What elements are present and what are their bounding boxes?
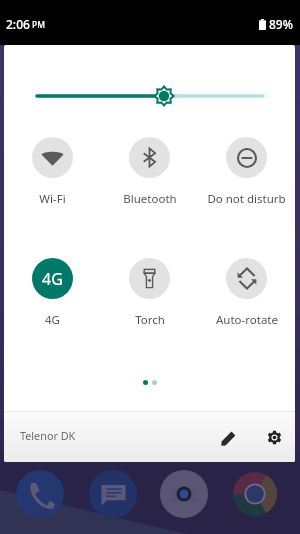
button[interactable]: Phone (16, 470, 64, 518)
staticText: 89% (269, 16, 293, 32)
button[interactable]: Auto-rotate (198, 258, 295, 328)
staticText: Wi-Fi (39, 191, 66, 207)
button[interactable]: Wi-Fi (4, 137, 101, 207)
staticText: Auto-rotate (216, 312, 278, 328)
button[interactable]: Settings (259, 422, 289, 452)
button[interactable]: Chrome (231, 470, 279, 518)
staticText: Torch (135, 312, 165, 328)
staticText: 4G (45, 312, 60, 328)
staticText: 2:06 (6, 16, 30, 32)
button[interactable]: Bluetooth (101, 137, 198, 207)
button[interactable]: Camera (160, 470, 208, 518)
staticText: PM (32, 19, 45, 31)
button[interactable]: Do not disturb (198, 137, 295, 207)
staticText: 4G (42, 268, 63, 290)
button[interactable]: Brightness (4, 84, 295, 108)
staticText: Telenor DK (20, 428, 76, 443)
staticText: Bluetooth (123, 191, 177, 207)
button[interactable]: Messages (89, 470, 137, 518)
staticText: Do not disturb (207, 191, 286, 207)
button[interactable]: Torch (101, 258, 198, 328)
button[interactable]: Edit (213, 423, 243, 453)
button[interactable]: 4G (4, 258, 101, 328)
